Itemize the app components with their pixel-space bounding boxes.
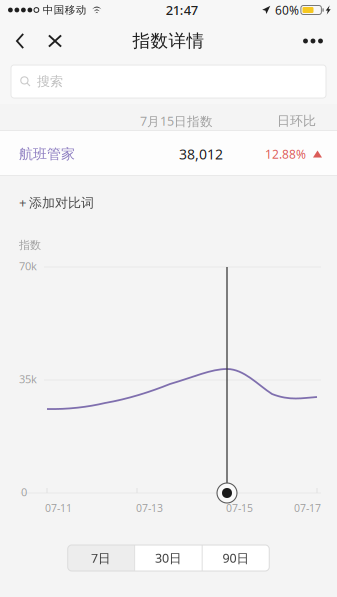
staticText: 指数详情: [132, 30, 204, 52]
staticText: 中国移动: [43, 3, 87, 17]
staticText: 30日: [155, 549, 182, 566]
button[interactable]: 30日: [135, 545, 202, 571]
button[interactable]: 搜索: [11, 65, 326, 98]
staticText: 07-11: [45, 501, 72, 515]
staticText: 7日: [91, 549, 111, 566]
button[interactable]: 90日: [203, 545, 269, 571]
button[interactable]: Back: [4, 20, 36, 62]
staticText: 21:47: [166, 1, 198, 19]
staticText: 35k: [19, 371, 37, 386]
staticText: 38,012: [179, 144, 223, 164]
staticText: 日环比: [277, 113, 316, 129]
staticText: + 添加对比词: [19, 194, 94, 211]
button[interactable]: More options: [293, 20, 333, 62]
staticText: 70k: [19, 258, 37, 273]
button[interactable]: 7日: [68, 545, 134, 571]
staticText: 指数: [19, 238, 41, 252]
button[interactable]: + 添加对比词: [0, 176, 337, 213]
staticText: 12.88%: [265, 146, 306, 162]
staticText: 7月15日指数: [140, 112, 213, 129]
staticText: 航班管家: [19, 145, 75, 163]
button[interactable]: Close: [36, 20, 74, 62]
staticText: 0: [21, 484, 27, 499]
staticText: 07-17: [294, 501, 321, 515]
staticText: 07-13: [136, 501, 163, 515]
staticText: 07-15: [226, 501, 253, 515]
staticText: 搜索: [37, 73, 63, 90]
staticText: 60%: [275, 2, 299, 18]
staticText: 90日: [222, 549, 249, 566]
